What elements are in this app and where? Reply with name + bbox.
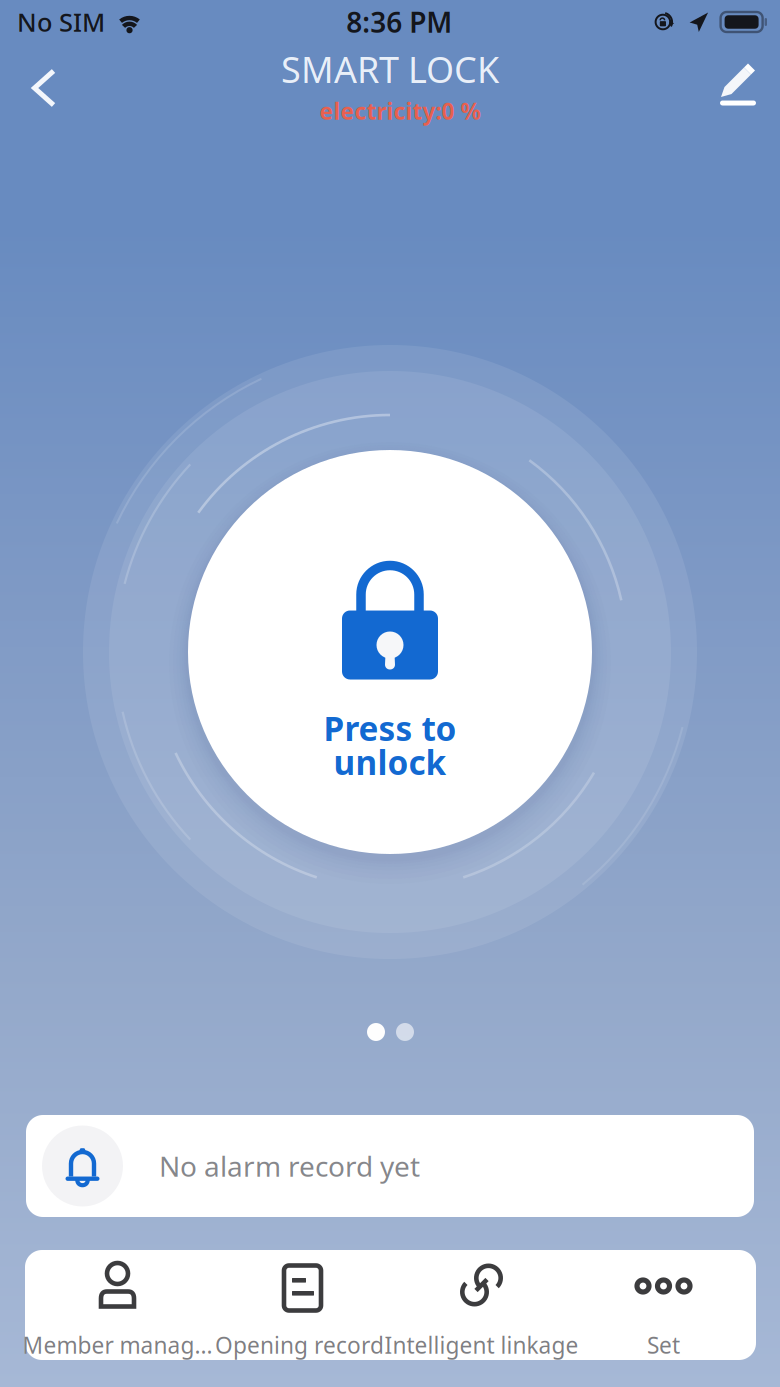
staticText: No SIM [17,5,105,39]
button[interactable]: Member manag... [26,1250,208,1360]
staticText: Press to [323,706,456,750]
button[interactable]: Intelligent linkage [390,1250,572,1360]
button[interactable]: Set [572,1250,754,1360]
staticText: Opening record [215,1330,384,1360]
button[interactable]: Edit [699,46,775,122]
button[interactable]: Opening record [208,1250,390,1360]
staticText: No alarm record yet [159,1147,420,1185]
staticText: electricity:0 % [319,96,480,126]
staticText: Intelligent linkage [384,1330,578,1360]
button[interactable]: Back [6,50,82,126]
button[interactable]: No alarm record yet [26,1115,754,1217]
staticText: Set [647,1330,680,1360]
button[interactable]: Press to [188,450,592,854]
staticText: 8:36 PM [346,3,452,41]
staticText: SMART LOCK [281,45,499,93]
staticText: unlock [333,740,446,784]
staticText: Member manag... [22,1330,212,1360]
